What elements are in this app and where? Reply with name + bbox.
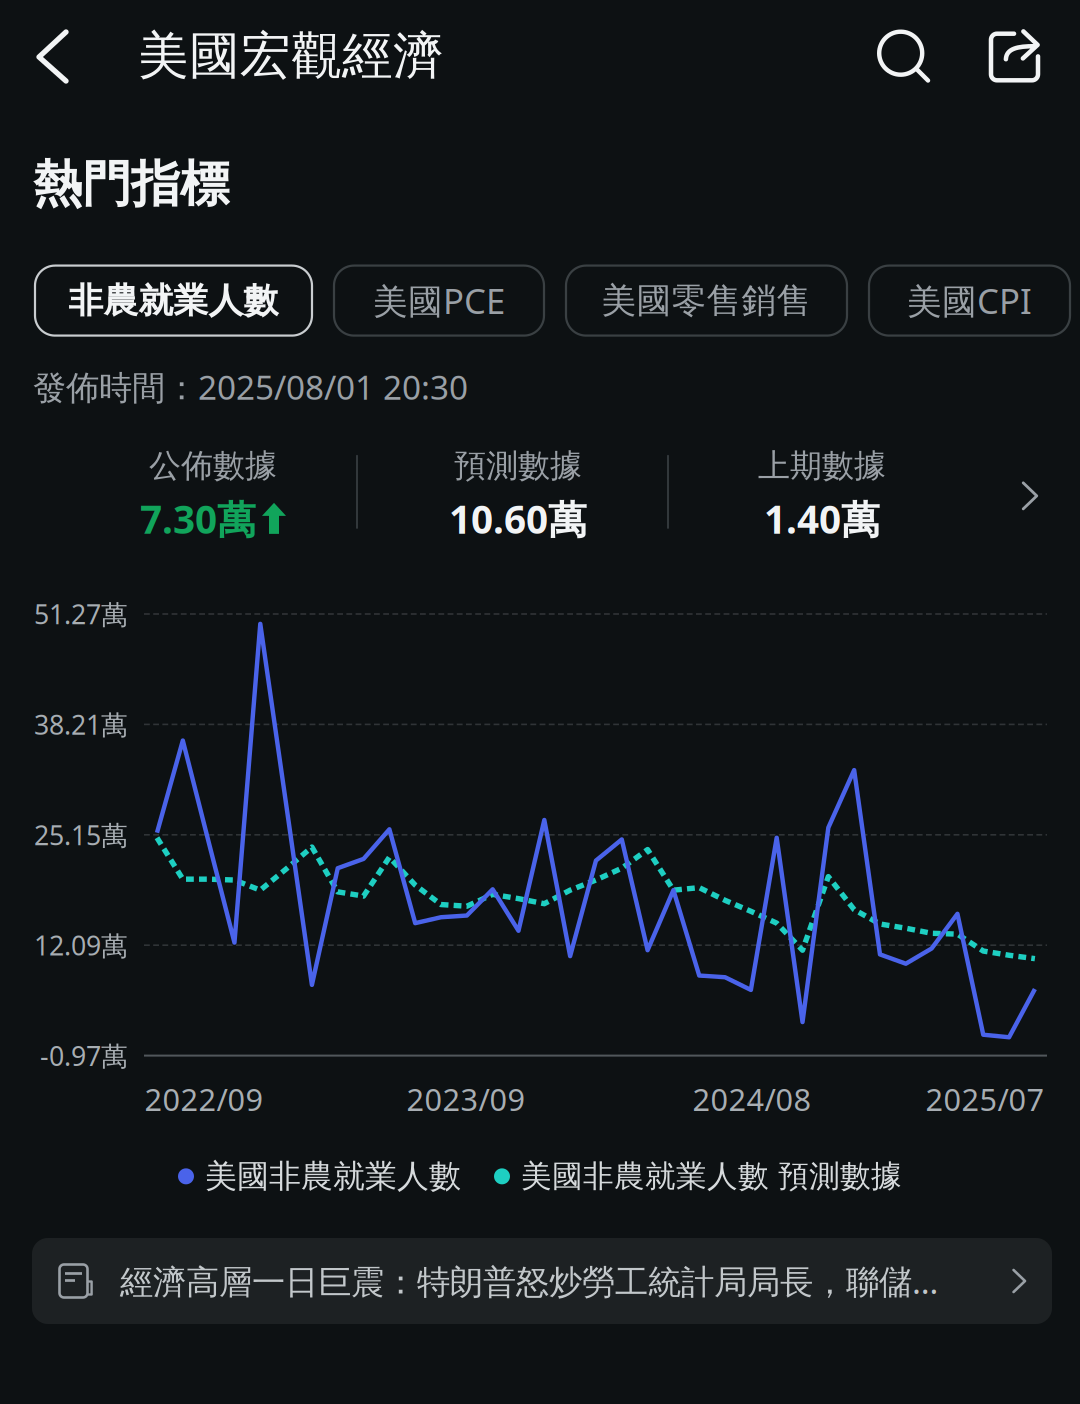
- staticText: 經濟高層一日巨震：特朗普怒炒勞工統計局局長，聯儲…: [120, 1259, 938, 1303]
- button[interactable]: 美國零售銷售: [566, 266, 847, 336]
- staticText: 1.40萬: [764, 493, 880, 544]
- staticText: 2024/08: [692, 1079, 811, 1119]
- staticText: 發佈時間：2025/08/01 20:30: [33, 365, 468, 409]
- button[interactable]: Search: [853, 11, 958, 100]
- button[interactable]: 美國CPI: [869, 266, 1070, 336]
- staticText: 美國CPI: [907, 278, 1032, 324]
- staticText: 美國宏觀經濟: [138, 25, 444, 87]
- staticText: 美國零售銷售: [601, 279, 811, 322]
- staticText: 上期數據: [758, 446, 886, 485]
- staticText: 12.09萬: [34, 927, 128, 963]
- staticText: 2025/07: [925, 1079, 1044, 1119]
- staticText: -0.97萬: [40, 1038, 128, 1073]
- staticText: 38.21萬: [34, 707, 128, 742]
- staticText: 熱門指標: [33, 154, 229, 215]
- staticText: 預測數據: [454, 446, 582, 485]
- button[interactable]: Back: [0, 12, 138, 100]
- staticText: 美國非農就業人數: [205, 1157, 461, 1196]
- staticText: 非農就業人數: [68, 279, 278, 322]
- button[interactable]: 美國PCE: [334, 266, 544, 336]
- staticText: 7.30萬: [140, 493, 256, 544]
- button[interactable]: Share: [958, 13, 1080, 99]
- staticText: 2022/09: [144, 1079, 263, 1119]
- staticText: 美國PCE: [373, 278, 505, 324]
- staticText: 公佈數據: [149, 446, 277, 485]
- staticText: 美國非農就業人數 預測數據: [521, 1157, 902, 1195]
- staticText: 2023/09: [406, 1079, 525, 1119]
- button[interactable]: 公佈數據: [0, 446, 1080, 546]
- staticText: 10.60萬: [449, 493, 587, 544]
- staticText: 25.15萬: [34, 817, 128, 852]
- button[interactable]: 非農就業人數: [35, 266, 312, 336]
- button[interactable]: 經濟高層一日巨震：特朗普怒炒勞工統計局局長，聯儲…: [32, 1238, 1052, 1324]
- staticText: 51.27萬: [34, 596, 128, 632]
